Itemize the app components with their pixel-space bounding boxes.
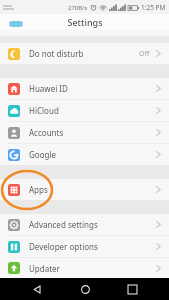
staticText: Accounts <box>29 127 64 138</box>
button[interactable]: Apps <box>0 179 169 200</box>
staticText: 270B/s <box>68 4 88 12</box>
button[interactable]: Home <box>74 278 96 300</box>
button[interactable]: Do not disturb <box>0 43 169 64</box>
button[interactable]: Accounts <box>0 122 169 144</box>
staticText: Apps <box>29 184 48 195</box>
staticText: Google <box>29 149 56 160</box>
staticText: Updater <box>29 263 60 274</box>
staticText: Do not disturb <box>29 48 84 59</box>
button[interactable]: Recent apps <box>121 278 143 300</box>
button[interactable]: Updater <box>0 258 169 278</box>
button[interactable]: Advanced settings <box>0 214 169 236</box>
button[interactable]: Huawei ID <box>0 78 169 100</box>
staticText: 1:25 PM <box>141 3 166 12</box>
staticText: Settings <box>67 16 103 28</box>
button[interactable]: Google <box>0 144 169 165</box>
button[interactable]: Developer options <box>0 236 169 258</box>
staticText: HiCloud <box>29 105 59 116</box>
staticText: Developer options <box>29 241 98 252</box>
staticText: Off <box>139 49 150 59</box>
button[interactable]: HiCloud <box>0 100 169 122</box>
staticText: Advanced settings <box>29 219 98 230</box>
button[interactable]: Back <box>26 278 48 300</box>
staticText: Huawei ID <box>29 83 68 94</box>
